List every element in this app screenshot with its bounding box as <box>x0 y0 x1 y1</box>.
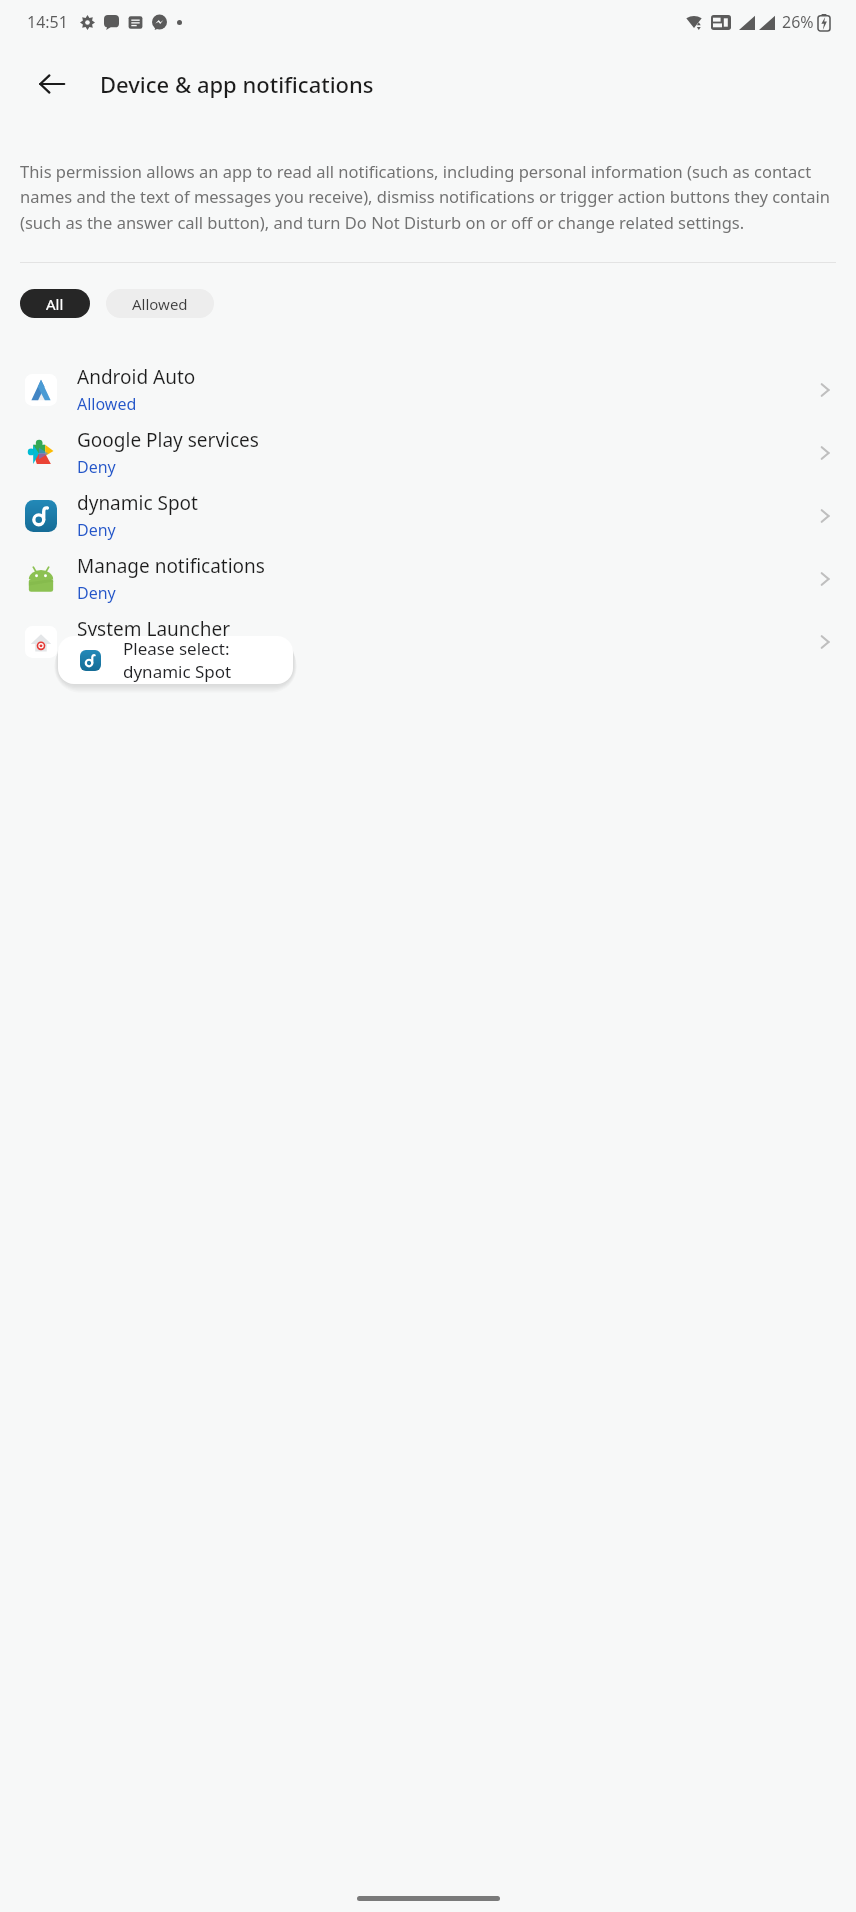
staticText: Manage notifications <box>77 553 265 579</box>
button[interactable]: Back <box>26 58 78 110</box>
staticText: Android Auto <box>77 364 196 390</box>
button[interactable]: dynamic Spot <box>0 484 856 547</box>
staticText: 26% <box>782 11 814 33</box>
staticText: Allowed <box>132 294 188 314</box>
button[interactable]: Please select: dynamic Spot <box>58 636 293 684</box>
staticText: 14:51 <box>27 11 68 33</box>
button[interactable]: Android Auto <box>0 358 856 421</box>
staticText: System Launcher <box>77 616 231 642</box>
staticText: dynamic Spot <box>77 490 198 516</box>
staticText: Deny <box>77 645 116 667</box>
staticText: Allowed <box>77 393 137 415</box>
button[interactable]: All <box>20 289 90 318</box>
button[interactable]: Allowed <box>106 289 214 318</box>
button[interactable]: Google Play services <box>0 421 856 484</box>
staticText: Deny <box>77 456 116 478</box>
staticText: Please select: dynamic Spot <box>123 637 293 683</box>
staticText: This permission allows an app to read al… <box>20 160 836 234</box>
button[interactable]: Manage notifications <box>0 547 856 610</box>
staticText: Deny <box>77 582 116 604</box>
staticText: Device & app notifications <box>100 69 374 99</box>
staticText: Google Play services <box>77 427 259 453</box>
staticText: Deny <box>77 519 116 541</box>
button[interactable]: System Launcher <box>0 610 856 673</box>
staticText: All <box>46 294 64 314</box>
